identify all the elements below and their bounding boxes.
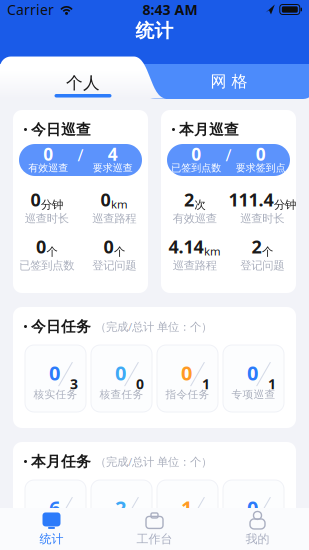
staticText: km (111, 196, 128, 212)
staticText: 0 (181, 359, 192, 386)
staticText: 个人 (66, 72, 100, 93)
button[interactable]: 工作台 (103, 508, 206, 550)
button[interactable]: 2 (91, 480, 152, 547)
button[interactable]: 0 (91, 345, 152, 412)
staticText: 4.14 (168, 234, 203, 259)
staticText: 本月任务 (31, 452, 91, 471)
staticText: 0 (247, 494, 258, 521)
staticText: 有效巡查 (173, 211, 217, 226)
staticText: 2 (251, 234, 261, 259)
staticText: 有效巡查 (28, 162, 68, 174)
staticText: 巡查路程 (173, 258, 217, 273)
button[interactable]: 我的 (206, 508, 309, 550)
staticText: 8:43 AM (142, 0, 197, 19)
staticText: 统计 (135, 19, 173, 42)
staticText: 0 (247, 359, 258, 386)
staticText: 专项巡查 (231, 523, 275, 536)
staticText: 1 (181, 494, 192, 521)
staticText: 0 (49, 359, 60, 386)
button[interactable]: 1 (157, 480, 218, 547)
staticText: 核查任务 (99, 388, 143, 401)
staticText: 分钟 (41, 197, 63, 212)
staticText: / (77, 144, 83, 166)
staticText: 111.4 (228, 187, 273, 212)
staticText: 2 (184, 187, 194, 212)
staticText: 0 (100, 187, 110, 212)
staticText: 要求签到点 (236, 162, 286, 174)
staticText: 巡查路程 (92, 211, 136, 226)
button[interactable]: 统计 (0, 508, 103, 550)
staticText: 0 (103, 234, 113, 259)
staticText: 工作台 (136, 531, 172, 546)
button[interactable]: 0 (223, 480, 284, 547)
staticText: 登记问题 (92, 258, 136, 273)
button[interactable]: 网 格 (143, 64, 309, 99)
staticText: 巡查时长 (240, 211, 284, 226)
button[interactable]: 6 (25, 480, 86, 547)
staticText: 网 格 (210, 71, 247, 92)
button[interactable]: 0 (223, 345, 284, 412)
staticText: 核实任务 (33, 388, 77, 401)
staticText: 要求巡查 (93, 162, 133, 174)
button[interactable]: 0 (25, 345, 86, 412)
staticText: 2 (115, 494, 126, 521)
staticText: 指令任务 (165, 388, 209, 401)
staticText: （完成/总计 单位：个） (95, 454, 212, 469)
staticText: 已签到点数 (19, 258, 74, 273)
button[interactable]: 0 (157, 345, 218, 412)
staticText: 我的 (245, 531, 269, 546)
staticText: / (225, 144, 231, 166)
staticText: 1 (268, 374, 276, 393)
staticText: 个 (262, 244, 273, 259)
staticText: 0 (43, 142, 53, 166)
staticText: 今日任务 (31, 317, 91, 336)
staticText: 0 (115, 359, 126, 386)
staticText: 登记问题 (240, 258, 284, 273)
staticText: 今日巡查 (31, 120, 91, 139)
staticText: 本月巡查 (179, 120, 239, 139)
staticText: 0 (36, 234, 46, 259)
staticText: 专项巡查 (231, 388, 275, 401)
staticText: 统计 (39, 531, 63, 546)
staticText: 核实任务 (33, 523, 77, 536)
staticText: 0 (30, 187, 40, 212)
staticText: km (204, 243, 221, 259)
staticText: Carrier (7, 0, 54, 19)
staticText: 个 (114, 244, 125, 259)
staticText: 1 (202, 374, 210, 393)
staticText: 次 (194, 197, 205, 212)
staticText: 0 (256, 142, 266, 166)
staticText: 核查任务 (99, 523, 143, 536)
staticText: 4 (108, 142, 118, 166)
staticText: 0 (191, 142, 201, 166)
staticText: 巡查时长 (25, 211, 69, 226)
staticText: 3 (70, 374, 78, 393)
staticText: （完成/总计 单位：个） (95, 319, 212, 334)
staticText: 分钟 (274, 197, 296, 212)
staticText: 0 (136, 374, 144, 393)
staticText: 6 (49, 494, 60, 521)
staticText: 已签到点数 (171, 162, 221, 174)
staticText: 个 (46, 244, 57, 259)
button[interactable]: 个人 (0, 57, 166, 99)
